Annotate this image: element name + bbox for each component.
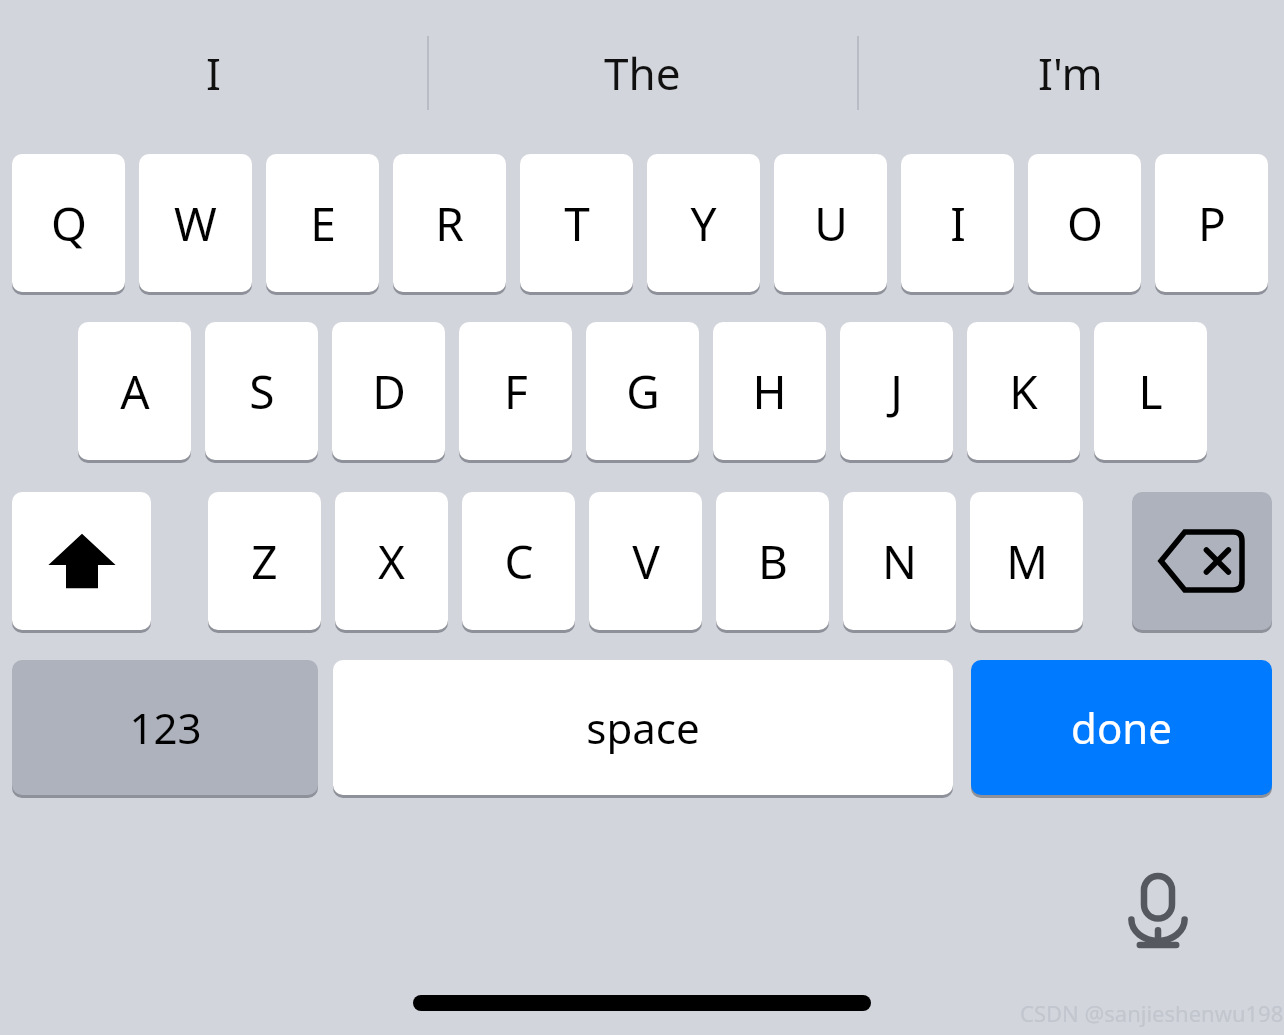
button[interactable]: Y xyxy=(647,154,760,292)
staticText: O xyxy=(1067,192,1103,255)
button[interactable]: F xyxy=(459,322,572,460)
button[interactable]: C xyxy=(462,492,575,630)
button[interactable]: O xyxy=(1028,154,1141,292)
button[interactable]: P xyxy=(1155,154,1268,292)
button[interactable]: B xyxy=(716,492,829,630)
staticText: B xyxy=(758,530,788,593)
staticText: L xyxy=(1138,360,1163,423)
button[interactable]: space xyxy=(333,660,953,795)
button[interactable]: E xyxy=(266,154,379,292)
staticText: I xyxy=(950,192,966,255)
staticText: R xyxy=(435,192,464,255)
staticText: I xyxy=(206,43,221,103)
staticText: CSDN @sanjieshenwu1987 xyxy=(1020,998,1284,1028)
button[interactable]: V xyxy=(589,492,702,630)
staticText: S xyxy=(249,360,275,423)
button[interactable]: W xyxy=(139,154,252,292)
button[interactable]: Z xyxy=(208,492,321,630)
button[interactable]: The xyxy=(427,10,857,135)
staticText: V xyxy=(632,530,660,593)
button[interactable]: L xyxy=(1094,322,1207,460)
button[interactable]: G xyxy=(586,322,699,460)
staticText: A xyxy=(120,360,150,423)
button[interactable]: N xyxy=(843,492,956,630)
staticText: C xyxy=(504,530,534,593)
button[interactable]: S xyxy=(205,322,318,460)
staticText: Q xyxy=(51,192,87,255)
staticText: H xyxy=(752,360,787,423)
staticText: F xyxy=(504,360,528,423)
staticText: G xyxy=(626,360,660,423)
staticText: M xyxy=(1006,530,1048,593)
staticText: X xyxy=(378,530,405,593)
button[interactable]: Q xyxy=(12,154,125,292)
staticText: Y xyxy=(690,192,717,255)
button[interactable]: H xyxy=(713,322,826,460)
button[interactable]: J xyxy=(840,322,953,460)
button[interactable]: Dictation xyxy=(1108,862,1208,962)
staticText: J xyxy=(890,360,903,423)
button[interactable]: done xyxy=(971,660,1272,795)
button[interactable]: 123 xyxy=(12,660,318,795)
button[interactable]: T xyxy=(520,154,633,292)
staticText: P xyxy=(1198,192,1226,255)
staticText: Z xyxy=(251,530,278,593)
button[interactable]: Shift xyxy=(12,492,151,630)
staticText: E xyxy=(310,192,336,255)
staticText: I'm xyxy=(1038,43,1103,103)
button[interactable]: M xyxy=(970,492,1083,630)
button[interactable]: I xyxy=(0,10,427,135)
button[interactable]: K xyxy=(967,322,1080,460)
staticText: T xyxy=(564,192,590,255)
button[interactable]: X xyxy=(335,492,448,630)
staticText: space xyxy=(586,699,700,756)
button[interactable]: U xyxy=(774,154,887,292)
staticText: done xyxy=(1071,699,1172,756)
button[interactable]: I'm xyxy=(857,10,1284,135)
staticText: N xyxy=(882,530,917,593)
staticText: K xyxy=(1009,360,1038,423)
button[interactable]: Delete xyxy=(1132,492,1272,630)
button[interactable]: R xyxy=(393,154,506,292)
button[interactable]: D xyxy=(332,322,445,460)
button[interactable]: A xyxy=(78,322,191,460)
staticText: U xyxy=(814,192,848,255)
staticText: 123 xyxy=(129,699,202,756)
staticText: The xyxy=(604,43,681,103)
staticText: W xyxy=(174,192,217,255)
button[interactable]: I xyxy=(901,154,1014,292)
staticText: D xyxy=(372,360,406,423)
